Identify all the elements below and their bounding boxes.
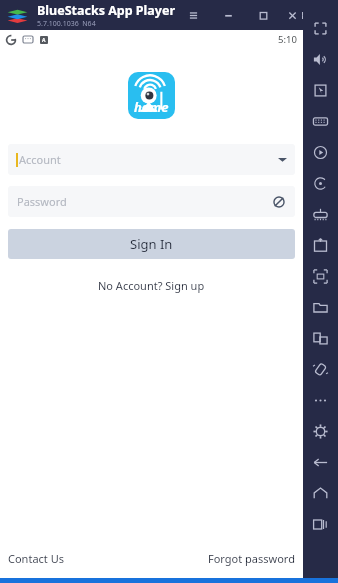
button[interactable]: Password [8, 186, 295, 217]
button[interactable]: Home [303, 478, 338, 509]
button[interactable]: Maximize [246, 0, 281, 30]
button[interactable]: Multi instance [303, 323, 338, 354]
staticText: BlueStacks App Player [37, 2, 176, 19]
staticText: Account [19, 152, 61, 167]
staticText: home [134, 98, 169, 116]
button[interactable]: Menu [176, 0, 211, 30]
button[interactable]: Account [8, 144, 295, 175]
button[interactable]: Back [303, 447, 338, 478]
button[interactable]: Pointer [303, 75, 338, 106]
button[interactable]: Record [303, 137, 338, 168]
button[interactable]: Keyboard [303, 106, 338, 137]
button[interactable]: Forgot password [208, 548, 295, 569]
staticText: Contact Us [8, 551, 64, 566]
button[interactable]: Game controls [303, 199, 338, 230]
button[interactable]: Close [281, 0, 303, 30]
button[interactable]: Media manager [303, 292, 338, 323]
button[interactable]: Settings [303, 416, 338, 447]
button[interactable]: More [303, 385, 338, 416]
button[interactable]: No Account? Sign up [94, 274, 209, 297]
staticText: Forgot password [208, 551, 295, 566]
button[interactable]: Minimize [211, 0, 246, 30]
button[interactable]: Recents [303, 509, 338, 540]
button[interactable]: Contact Us [8, 548, 64, 569]
button[interactable]: Shake [303, 354, 338, 385]
staticText: 5.7.100.1036 N64 [37, 19, 96, 29]
button[interactable]: Fullscreen [303, 13, 338, 44]
button[interactable]: Rotate [303, 168, 338, 199]
staticText: Password [17, 194, 67, 209]
button[interactable]: Install APK [303, 230, 338, 261]
staticText: Sign In [130, 235, 173, 253]
button[interactable]: Screenshot [303, 261, 338, 292]
button[interactable]: Sign In [8, 229, 295, 259]
staticText: No Account? Sign up [98, 278, 205, 293]
button[interactable]: Show password [272, 195, 286, 209]
button[interactable]: Volume [303, 44, 338, 75]
staticText: A [42, 37, 46, 44]
staticText: 5:10 [278, 33, 297, 46]
